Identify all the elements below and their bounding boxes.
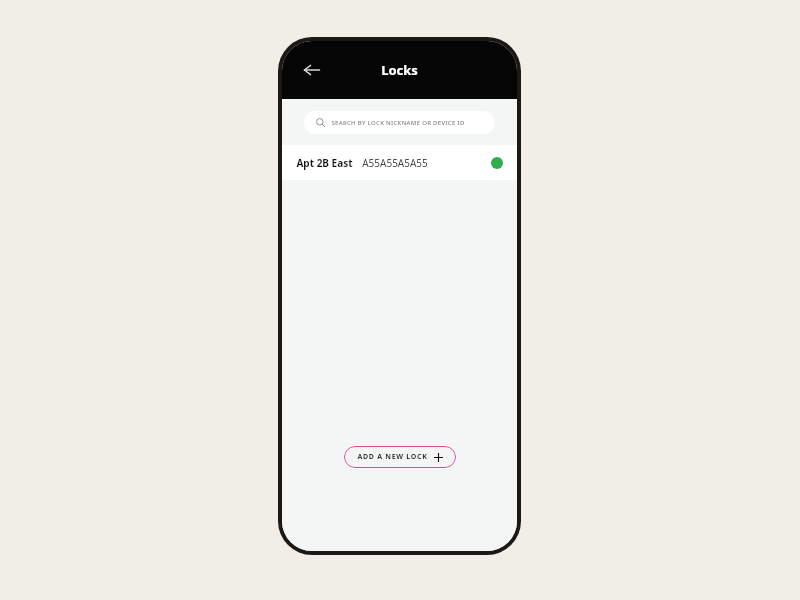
- staticText: SEARCH BY LOCK NICKNAME OR DEVICE ID: [331, 119, 465, 127]
- staticText: ADD A NEW LOCK: [357, 452, 428, 462]
- button[interactable]: Back: [296, 54, 328, 86]
- button[interactable]: Apt 2B East: [282, 145, 517, 180]
- staticText: Locks: [381, 61, 418, 79]
- staticText: A55A55A5A55: [362, 156, 428, 170]
- button[interactable]: SEARCH BY LOCK NICKNAME OR DEVICE ID: [304, 111, 495, 134]
- button[interactable]: ADD A NEW LOCK: [344, 446, 456, 468]
- staticText: Apt 2B East: [296, 156, 353, 170]
